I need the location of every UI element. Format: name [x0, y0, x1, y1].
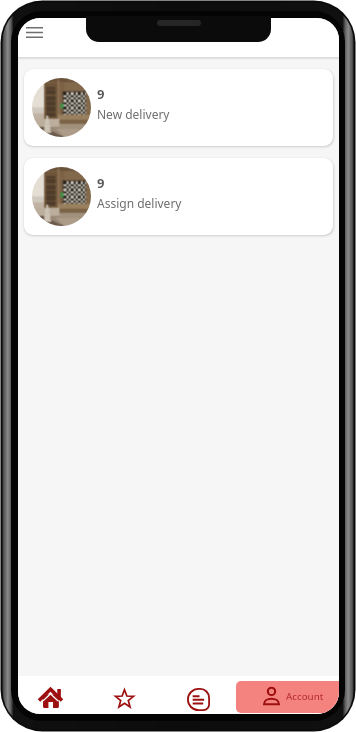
staticText: 9 [97, 85, 105, 103]
button[interactable]: 9 [24, 69, 333, 146]
button[interactable]: Orders [166, 676, 231, 714]
staticText: 9 [97, 174, 105, 192]
button[interactable]: 9 [24, 158, 333, 235]
button[interactable]: Menu [19, 18, 49, 47]
button[interactable]: Favourites [83, 676, 166, 714]
staticText: Assign delivery [97, 195, 182, 211]
button[interactable]: Account [236, 681, 339, 713]
button[interactable]: Home [18, 676, 83, 714]
staticText: Account [286, 690, 324, 703]
staticText: New delivery [97, 106, 170, 122]
